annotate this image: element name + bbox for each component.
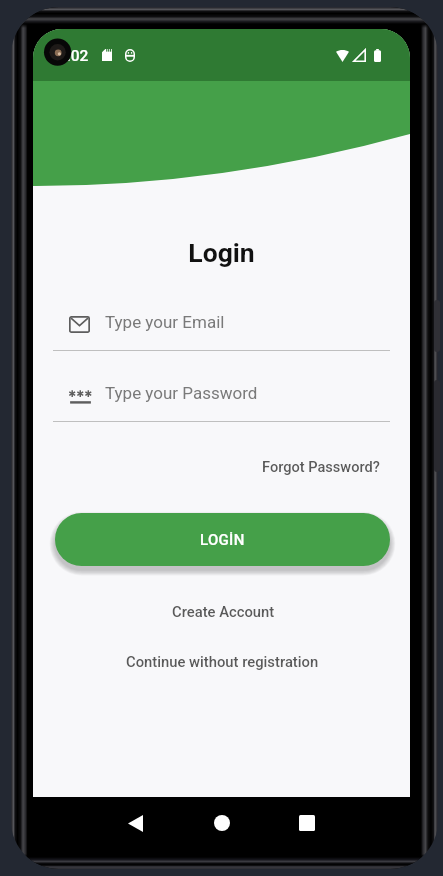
button[interactable]: Recent apps	[292, 808, 322, 838]
button[interactable]: LOGİN	[55, 513, 390, 566]
staticText: LOGİN	[200, 531, 245, 549]
button[interactable]: Create Account	[160, 597, 287, 626]
button[interactable]: Type your Password	[33, 382, 410, 424]
staticText: Create Account	[172, 603, 275, 620]
staticText: Login	[33, 237, 410, 268]
button[interactable]: Type your Email	[33, 311, 410, 353]
staticText: Forgot Password?	[262, 458, 380, 475]
staticText: Type your Email	[105, 312, 225, 332]
button[interactable]: Continue without registration	[114, 647, 331, 676]
button[interactable]: Home	[207, 808, 237, 838]
button[interactable]: Forgot Password?	[254, 452, 388, 481]
staticText: Continue without registration	[126, 653, 319, 670]
staticText: Type your Password	[105, 383, 258, 403]
staticText: 10:02	[49, 47, 89, 65]
button[interactable]: Back	[120, 808, 150, 838]
